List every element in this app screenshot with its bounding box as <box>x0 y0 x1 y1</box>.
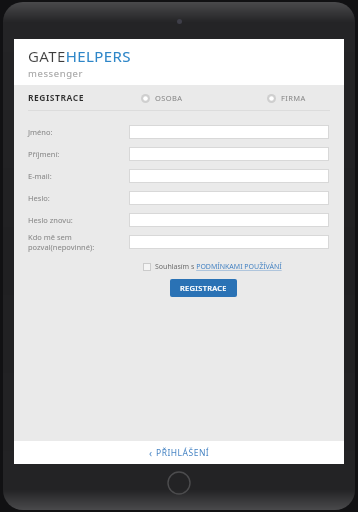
button[interactable]: ‹ <box>145 442 214 464</box>
staticText: Kdo mě sem pozval(nepovinné): <box>28 232 129 252</box>
button[interactable] <box>129 169 329 183</box>
staticText: E-mail: <box>28 171 52 181</box>
staticText: Souhlasím s PODMÍNKAMI POUŽÍVÁNÍ <box>155 262 282 272</box>
staticText: REGISTRACE <box>28 92 84 104</box>
staticText: ‹ <box>149 446 153 460</box>
staticText: OSOBA <box>155 93 183 103</box>
button[interactable]: FIRMA <box>267 93 306 103</box>
staticText: PŘIHLÁŠENÍ <box>156 447 210 459</box>
staticText: Heslo znovu: <box>28 215 73 225</box>
button[interactable] <box>129 235 329 249</box>
button[interactable]: OSOBA <box>141 93 183 103</box>
button[interactable] <box>129 147 329 161</box>
staticText: messenger <box>28 67 84 80</box>
staticText: REGISTRACE <box>180 283 227 293</box>
staticText: FIRMA <box>281 93 306 103</box>
button[interactable]: Souhlasím s PODMÍNKAMI POUŽÍVÁNÍ <box>143 262 282 272</box>
button[interactable] <box>129 191 329 205</box>
staticText: Heslo: <box>28 193 50 203</box>
button[interactable]: REGISTRACE <box>170 279 237 297</box>
staticText: GATEHELPERS <box>28 46 131 66</box>
staticText: Příjmení: <box>28 149 60 159</box>
button[interactable] <box>129 213 329 227</box>
button[interactable] <box>129 125 329 139</box>
staticText: Jméno: <box>28 127 53 137</box>
